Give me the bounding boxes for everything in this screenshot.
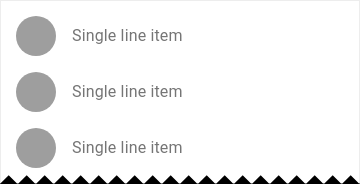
- other: Avatar: [16, 72, 56, 112]
- button[interactable]: Avatar: [0, 8, 360, 64]
- staticText: Single line item: [72, 26, 183, 45]
- other: Avatar: [16, 128, 56, 168]
- button[interactable]: Avatar: [0, 64, 360, 120]
- staticText: Single line item: [72, 82, 183, 101]
- button[interactable]: Avatar: [0, 120, 360, 176]
- other: Avatar: [16, 16, 56, 56]
- staticText: Single line item: [72, 138, 183, 157]
